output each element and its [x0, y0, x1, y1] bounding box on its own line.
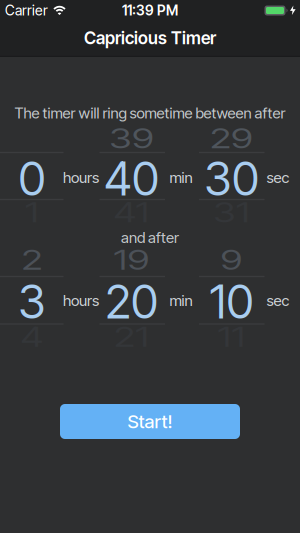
staticText: 3: [18, 273, 46, 330]
staticText: Capricious Timer: [84, 28, 216, 48]
staticText: 11:39 PM: [122, 2, 178, 19]
staticText: 21: [110, 309, 153, 365]
staticText: 10: [209, 273, 253, 330]
staticText: 31: [209, 184, 254, 241]
staticText: sec: [266, 168, 289, 187]
staticText: Carrier: [5, 2, 48, 19]
staticText: 39: [104, 110, 159, 167]
staticText: hours: [63, 168, 99, 187]
staticText: 1: [23, 184, 40, 241]
staticText: Start!: [127, 410, 172, 433]
staticText: 9: [218, 232, 245, 288]
staticText: 41: [109, 184, 153, 241]
staticText: 0: [18, 150, 45, 207]
staticText: 2: [19, 232, 45, 288]
staticText: 40: [104, 150, 159, 207]
staticText: The timer will ring sometime between aft…: [14, 104, 285, 122]
staticText: 30: [204, 150, 259, 207]
staticText: 4: [18, 309, 46, 365]
staticText: 11: [214, 309, 248, 365]
staticText: hours: [63, 291, 99, 310]
staticText: sec: [266, 291, 289, 310]
staticText: 20: [105, 273, 158, 330]
button[interactable]: Start!: [60, 404, 240, 439]
staticText: min: [169, 168, 192, 187]
staticText: 19: [109, 232, 153, 288]
staticText: min: [169, 291, 192, 310]
staticText: 29: [205, 110, 258, 167]
staticText: and after: [121, 228, 179, 247]
